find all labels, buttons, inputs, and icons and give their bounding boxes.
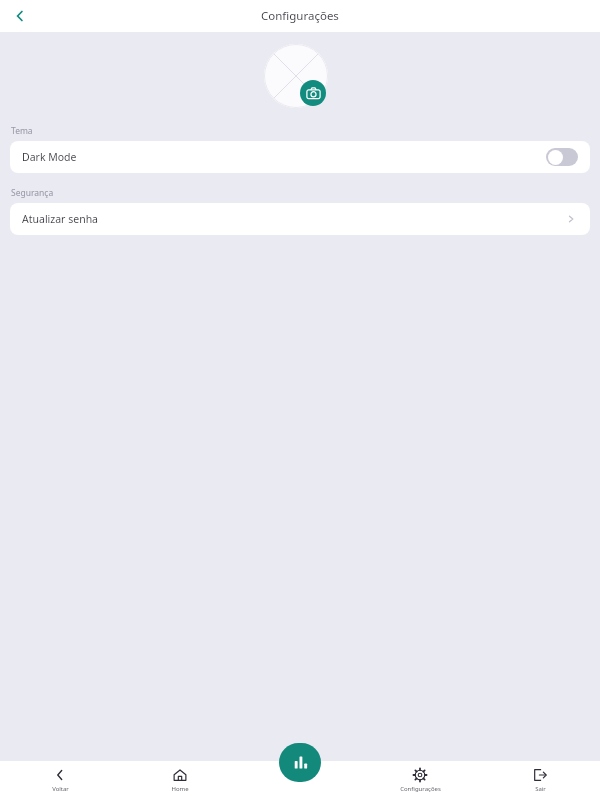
button[interactable]: Dark Mode xyxy=(546,148,578,166)
button[interactable]: Voltar xyxy=(0,0,40,32)
staticText: Configurações xyxy=(261,8,339,24)
button[interactable]: Foto de perfil xyxy=(264,44,328,108)
button[interactable]: Estatísticas xyxy=(279,743,321,782)
button[interactable]: Sair xyxy=(480,761,600,800)
button[interactable]: Configurações xyxy=(360,761,480,800)
staticText: Dark Mode xyxy=(22,150,77,164)
staticText: Voltar xyxy=(52,785,69,793)
button[interactable]: Voltar xyxy=(0,761,120,800)
staticText: Atualizar senha xyxy=(22,212,99,226)
staticText: Segurança xyxy=(11,187,54,199)
button[interactable]: Dark Mode xyxy=(10,141,590,173)
staticText: Sair xyxy=(535,785,546,793)
staticText: Home xyxy=(171,785,189,793)
staticText: Tema xyxy=(11,125,33,137)
button[interactable]: Atualizar senha xyxy=(10,203,590,235)
button[interactable]: Home xyxy=(120,761,240,800)
button[interactable]: Alterar foto xyxy=(300,80,326,106)
staticText: Configurações xyxy=(400,785,441,793)
